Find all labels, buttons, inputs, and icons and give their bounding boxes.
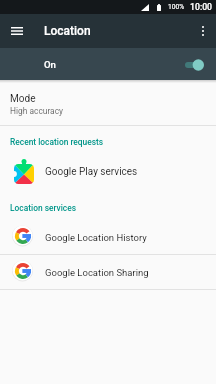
staticText: Location services	[10, 203, 76, 213]
staticText: Mode	[10, 93, 36, 105]
button[interactable]: Mode	[0, 80, 216, 125]
staticText: On	[44, 59, 56, 70]
button[interactable]: Open navigation menu	[5, 19, 29, 43]
staticText: Location	[44, 24, 91, 38]
staticText: High accuracy	[10, 106, 64, 116]
staticText: Google Location History	[45, 232, 147, 243]
staticText: Google Play services	[45, 166, 138, 178]
button[interactable]: Google Location Sharing	[0, 254, 216, 289]
button[interactable]: More options	[191, 19, 215, 43]
button[interactable]: On	[0, 48, 216, 80]
staticText: Recent location requests	[10, 137, 104, 147]
button[interactable]: Google Play services	[0, 151, 216, 192]
staticText: 100%	[168, 3, 185, 11]
button[interactable]: Google Location History	[0, 219, 216, 254]
staticText: 10:00	[190, 2, 213, 12]
staticText: Google Location Sharing	[45, 267, 149, 278]
